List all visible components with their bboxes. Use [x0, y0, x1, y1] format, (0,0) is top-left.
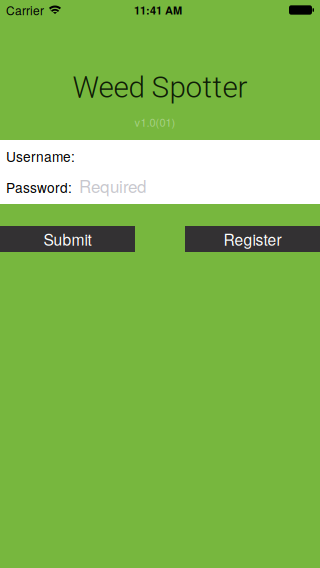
- staticText: Weed Spotter: [72, 70, 247, 105]
- button[interactable]: Submit: [0, 226, 135, 252]
- button[interactable]: Register: [185, 226, 320, 252]
- staticText: Carrier: [6, 1, 44, 19]
- staticText: Password:: [6, 177, 72, 197]
- staticText: Register: [223, 228, 281, 250]
- staticText: v1.0(01): [134, 114, 175, 130]
- staticText: 11:41 AM: [134, 2, 182, 18]
- staticText: Required: [79, 173, 146, 198]
- staticText: Submit: [43, 228, 91, 250]
- staticText: Username:: [6, 146, 75, 166]
